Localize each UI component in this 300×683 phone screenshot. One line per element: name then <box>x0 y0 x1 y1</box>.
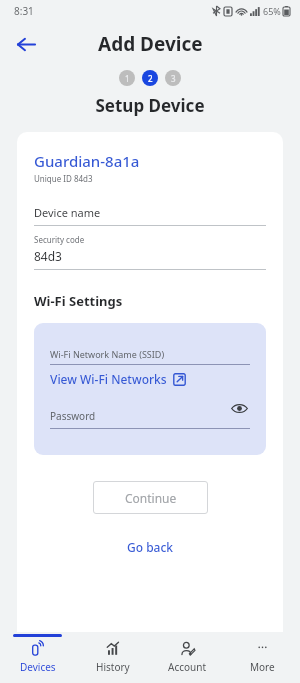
staticText: 84d3 <box>34 248 62 264</box>
button[interactable]: More <box>225 632 300 683</box>
staticText: Account <box>168 660 207 674</box>
staticText: Password <box>50 409 96 423</box>
staticText: Device name <box>34 205 101 220</box>
staticText: Devices <box>20 660 56 674</box>
staticText: Guardian-8a1a <box>34 151 140 171</box>
staticText: Add Device <box>98 31 203 57</box>
staticText: 1 <box>125 73 130 84</box>
staticText: Continue <box>125 490 177 506</box>
button[interactable]: Back <box>8 26 44 62</box>
staticText: 2 <box>148 73 153 84</box>
staticText: 3 <box>171 73 176 84</box>
staticText: Setup Device <box>0 94 300 117</box>
staticText: History <box>96 660 130 674</box>
staticText: Wi-Fi Settings <box>34 292 123 310</box>
button[interactable]: Continue <box>93 481 208 514</box>
staticText: Go back <box>127 539 174 555</box>
button[interactable]: Go back <box>115 535 186 559</box>
staticText: Unique ID 84d3 <box>34 173 93 184</box>
button[interactable]: History <box>75 632 150 683</box>
button[interactable]: Devices <box>0 632 75 683</box>
staticText: 8:31 <box>14 4 34 18</box>
button[interactable]: Show password <box>228 397 250 419</box>
staticText: More <box>250 660 275 674</box>
button[interactable]: View Wi-Fi Networks <box>50 371 186 387</box>
staticText: Security code <box>34 234 85 245</box>
staticText: Wi-Fi Network Name (SSID) <box>50 348 165 360</box>
staticText: View Wi-Fi Networks <box>50 371 167 387</box>
button[interactable]: Account <box>150 632 225 683</box>
staticText: 65% <box>263 5 281 17</box>
